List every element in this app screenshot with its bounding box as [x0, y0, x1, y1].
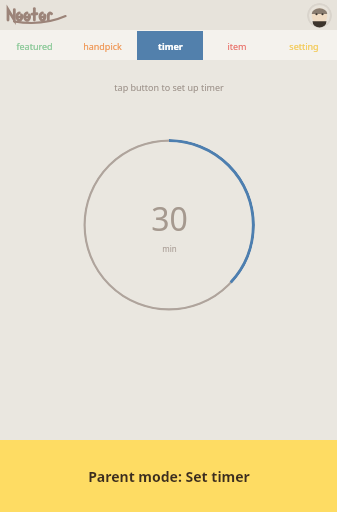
staticText: item	[227, 40, 247, 52]
button[interactable]: timer	[137, 31, 203, 60]
button[interactable]: featured	[1, 31, 67, 60]
staticText: setting	[289, 40, 319, 52]
staticText: 30	[151, 197, 188, 241]
button[interactable]: handpick	[69, 31, 135, 60]
button[interactable]: Parent mode: Set timer	[0, 440, 337, 512]
staticText: timer	[158, 40, 183, 52]
button[interactable]: Profile	[307, 3, 332, 28]
staticText: featured	[16, 40, 53, 52]
button[interactable]: Set timer dial	[83, 139, 255, 311]
button[interactable]: setting	[271, 31, 337, 60]
staticText: min	[162, 243, 177, 254]
staticText: handpick	[83, 40, 122, 52]
staticText: Parent mode: Set timer	[88, 467, 250, 486]
button[interactable]: item	[204, 31, 270, 60]
staticText: tap button to set up timer	[114, 81, 224, 93]
